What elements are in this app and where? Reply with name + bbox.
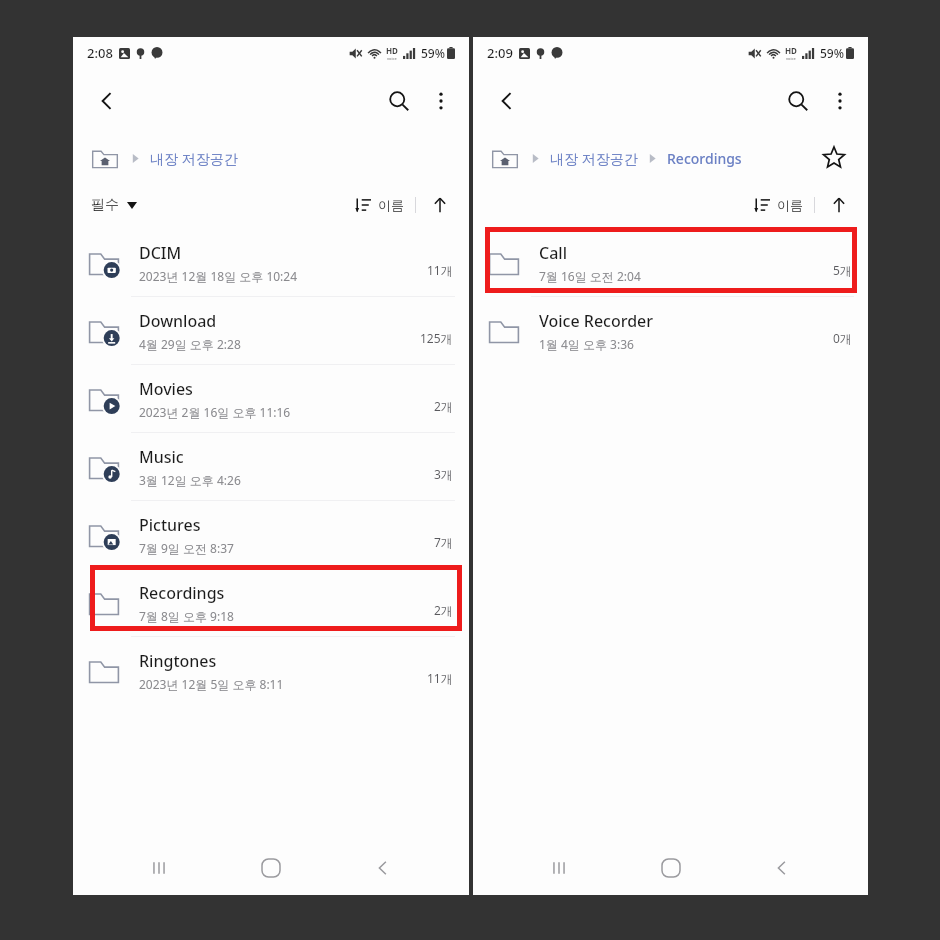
staticText: Music	[139, 446, 184, 468]
staticText: 2:08	[87, 44, 113, 62]
staticText: 1월 4일 오후 3:36	[539, 336, 634, 352]
button[interactable]: Home	[645, 842, 697, 894]
staticText: Movies	[139, 378, 193, 400]
staticText: 59%	[820, 45, 844, 61]
button[interactable]: More options	[820, 81, 860, 121]
staticText: 내장 저장공간	[550, 149, 638, 168]
staticText: 2023년 12월 5일 오후 8:11	[139, 676, 284, 692]
staticText: 2개	[434, 602, 453, 618]
button[interactable]: Add to favourites	[814, 138, 854, 178]
button[interactable]: Home	[245, 842, 297, 894]
staticText: 2:09	[487, 44, 513, 62]
button[interactable]: 이름	[355, 197, 404, 213]
staticText: Voice Recorder	[539, 310, 654, 332]
staticText: 2개	[434, 398, 453, 414]
button[interactable]: Recent apps	[133, 842, 185, 894]
button[interactable]: Pictures	[73, 501, 469, 568]
staticText: 3개	[434, 466, 453, 482]
button[interactable]: Download	[73, 297, 469, 364]
staticText: HD	[785, 45, 797, 56]
button[interactable]: Sort ascending	[427, 192, 453, 218]
button[interactable]: 필수	[91, 196, 137, 214]
button[interactable]: DCIM	[73, 229, 469, 296]
button[interactable]: Sort ascending	[826, 192, 852, 218]
staticText: 4월 29일 오후 2:28	[139, 336, 241, 352]
staticText: 125개	[420, 330, 453, 346]
button[interactable]: Back	[485, 79, 529, 123]
button[interactable]: More options	[421, 81, 461, 121]
staticText: Recordings	[139, 582, 225, 604]
button[interactable]: 내장 저장공간	[550, 149, 638, 168]
staticText: DCIM	[139, 242, 182, 264]
staticText: 7월 9일 오전 8:37	[139, 540, 234, 556]
button[interactable]: Recordings	[667, 149, 742, 168]
button[interactable]: 이름	[754, 197, 803, 213]
staticText: 2023년 12월 18일 오후 10:24	[139, 268, 298, 284]
staticText: voice	[387, 56, 397, 61]
staticText: Ringtones	[139, 650, 217, 672]
staticText: 7개	[434, 534, 453, 550]
staticText: Call	[539, 242, 567, 264]
staticText: 5개	[833, 262, 852, 278]
staticText: Recordings	[667, 149, 742, 168]
staticText: 11개	[427, 670, 453, 686]
button[interactable]: Home	[91, 146, 119, 170]
staticText: 59%	[421, 45, 445, 61]
staticText: Download	[139, 310, 217, 332]
button[interactable]: Recent apps	[533, 842, 585, 894]
button[interactable]: Movies	[73, 365, 469, 432]
button[interactable]: Home	[491, 146, 519, 170]
staticText: Pictures	[139, 514, 201, 536]
button[interactable]: Search	[776, 79, 820, 123]
button[interactable]: Call	[473, 229, 868, 296]
staticText: voice	[786, 56, 796, 61]
staticText: 11개	[427, 262, 453, 278]
button[interactable]: Ringtones	[73, 637, 469, 704]
button[interactable]: Music	[73, 433, 469, 500]
staticText: 이름	[777, 197, 803, 213]
staticText: 7월 16일 오전 2:04	[539, 268, 641, 284]
staticText: 3월 12일 오후 4:26	[139, 472, 241, 488]
button[interactable]: Search	[377, 79, 421, 123]
staticText: HD	[386, 45, 398, 56]
staticText: 7월 8일 오후 9:18	[139, 608, 234, 624]
button[interactable]: 내장 저장공간	[150, 149, 238, 168]
button[interactable]: Back	[85, 79, 129, 123]
button[interactable]: Recordings	[73, 569, 469, 636]
staticText: 이름	[378, 197, 404, 213]
button[interactable]: Back	[756, 842, 808, 894]
staticText: 2023년 2월 16일 오후 11:16	[139, 404, 291, 420]
button[interactable]: Back	[357, 842, 409, 894]
staticText: 0개	[833, 330, 852, 346]
staticText: 내장 저장공간	[150, 149, 238, 168]
button[interactable]: Voice Recorder	[473, 297, 868, 364]
staticText: 필수	[91, 196, 119, 214]
